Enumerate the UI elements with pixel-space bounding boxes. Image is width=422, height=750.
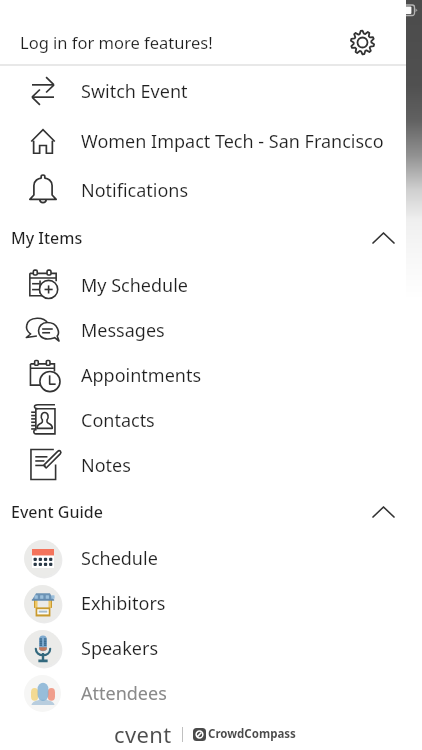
button[interactable]: Notifications [0, 167, 406, 213]
button[interactable]: Speakers [0, 626, 406, 671]
staticText: Appointments [81, 363, 202, 388]
staticText: My Schedule [81, 273, 188, 298]
staticText: Notes [81, 453, 131, 478]
button[interactable]: Log in for more features! [0, 20, 406, 64]
staticText: Women Impact Tech - San Francisco [81, 129, 384, 154]
button[interactable]: My Items [0, 213, 406, 263]
button[interactable]: Messages [0, 308, 406, 353]
staticText: Exhibitors [81, 591, 166, 616]
staticText: Switch Event [81, 79, 188, 104]
button[interactable]: Women Impact Tech - San Francisco [0, 116, 406, 167]
staticText: CrowdCompass [208, 726, 296, 742]
staticText: Log in for more features! [20, 31, 213, 53]
button[interactable]: Schedule [0, 536, 406, 581]
button[interactable]: My Schedule [0, 263, 406, 308]
staticText: My Items [11, 227, 83, 249]
button[interactable]: Switch Event [0, 66, 406, 116]
button[interactable]: Appointments [0, 353, 406, 398]
button[interactable]: Attendees [0, 671, 406, 716]
button[interactable]: Exhibitors [0, 581, 406, 626]
button[interactable]: Notes [0, 443, 406, 488]
button[interactable]: Contacts [0, 398, 406, 443]
staticText: Contacts [81, 408, 155, 433]
staticText: Speakers [81, 636, 159, 661]
staticText: Attendees [81, 681, 167, 706]
button[interactable]: Settings [345, 25, 379, 59]
staticText: Notifications [81, 178, 189, 203]
staticText: Messages [81, 318, 165, 343]
staticText: Schedule [81, 546, 158, 571]
staticText: Event Guide [11, 501, 103, 523]
button[interactable]: Event Guide [0, 488, 406, 536]
staticText: cvent [114, 719, 172, 749]
